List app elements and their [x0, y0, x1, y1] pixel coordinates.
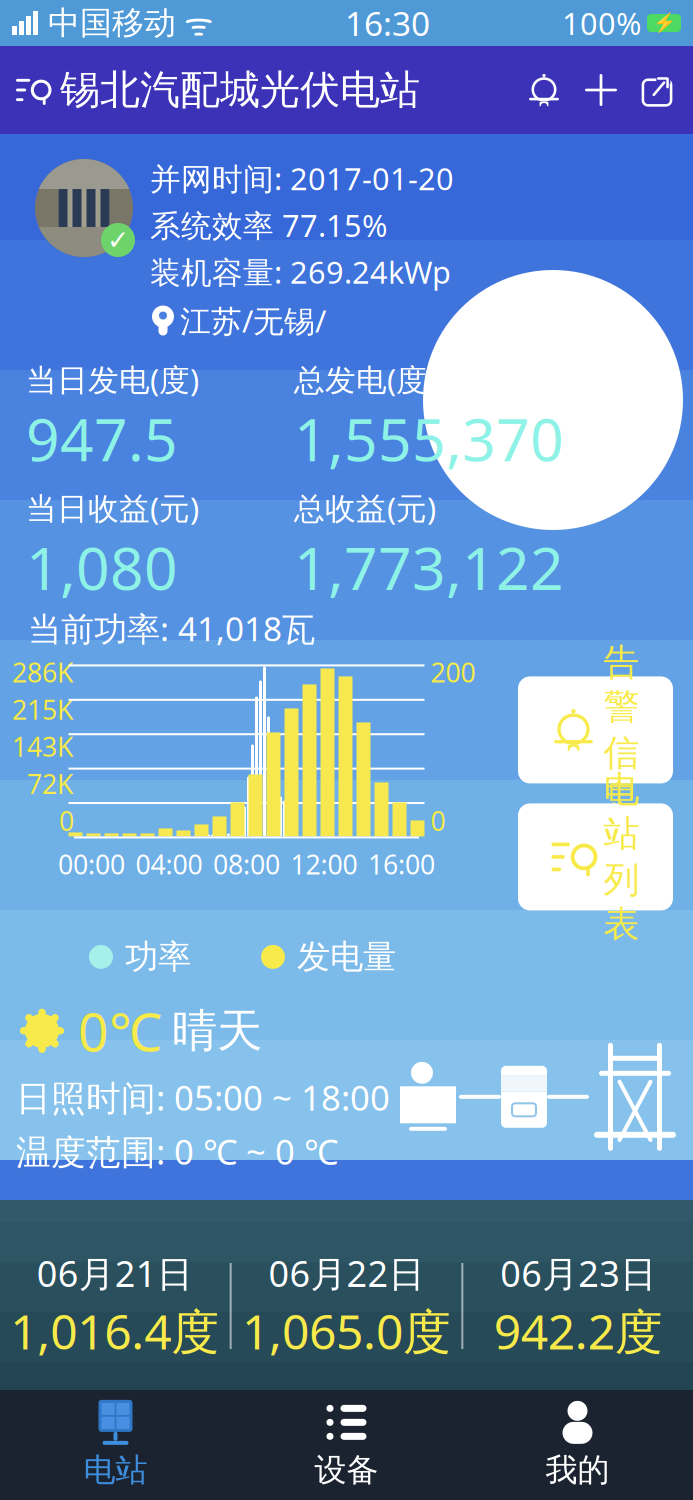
button[interactable]: 锡北汽配城光伏电站 — [0, 55, 420, 124]
staticText: 1,555,370 — [294, 400, 564, 477]
staticText: 16:00 — [368, 846, 435, 882]
staticText: 当前功率: 41,018瓦 — [28, 606, 315, 650]
staticText: 装机容量: 269.24kWp — [150, 251, 451, 292]
staticText: 我的 — [545, 1450, 609, 1490]
staticText: 1,080 — [26, 528, 178, 606]
staticText: 功率 — [125, 936, 191, 977]
staticText: 143K — [12, 729, 74, 764]
staticText: 06月21日 — [37, 1249, 193, 1297]
staticText: 告警 — [603, 640, 639, 729]
button[interactable]: 我的 — [462, 1390, 693, 1500]
staticText: 0 — [59, 803, 74, 838]
staticText: 0℃ — [78, 995, 162, 1066]
staticText: 1,773,122 — [294, 528, 564, 606]
staticText: 04:00 — [135, 846, 202, 882]
staticText: 942.2度 — [494, 1299, 663, 1363]
staticText: 08:00 — [213, 846, 280, 882]
staticText: 16:30 — [345, 1, 430, 45]
staticText: 06月22日 — [268, 1249, 424, 1297]
staticText: 总发电(度) — [294, 359, 436, 400]
staticText: 0 — [430, 803, 445, 838]
staticText: 列表 — [603, 858, 639, 946]
staticText: 设备 — [314, 1450, 378, 1490]
staticText: 电站 — [603, 767, 639, 856]
button[interactable]: Add — [573, 62, 629, 118]
staticText: 中国移动 — [38, 3, 176, 43]
staticText: 06月23日 — [500, 1249, 656, 1297]
staticText: 286K — [12, 654, 74, 690]
staticText: 100% — [562, 3, 641, 43]
button[interactable]: 告警 — [518, 676, 673, 783]
staticText: 系统效率 77.15% — [150, 205, 387, 245]
staticText: 1,065.0度 — [242, 1299, 451, 1363]
staticText: 电站 — [83, 1450, 147, 1490]
staticText: 72K — [27, 766, 74, 801]
staticText: 00:00 — [58, 846, 125, 882]
staticText: ✓ — [107, 225, 129, 255]
staticText: 当日发电(度) — [26, 359, 199, 400]
staticText: ᯤ — [176, 2, 213, 44]
button[interactable]: 电站 — [518, 803, 673, 910]
staticText: 发电量 — [297, 936, 396, 977]
staticText: ⚡ — [652, 12, 675, 34]
staticText: 12:00 — [290, 846, 357, 882]
staticText: 锡北汽配城光伏电站 — [60, 65, 420, 114]
staticText: 信息 — [603, 731, 639, 819]
button[interactable]: 电站 — [0, 1390, 231, 1500]
staticText: 当日收益(元) — [26, 487, 199, 528]
button[interactable]: 设备 — [231, 1390, 462, 1500]
staticText: 总收益(元) — [294, 487, 436, 528]
staticText: 947.5 — [26, 400, 178, 477]
staticText: 215K — [12, 692, 74, 727]
staticText: 200 — [430, 654, 475, 690]
staticText: 1,016.4度 — [10, 1299, 219, 1363]
staticText: 晴天 — [172, 1003, 262, 1059]
button[interactable]: Alerts — [515, 61, 573, 119]
staticText: 温度范围: 0 ℃ ~ 0 ℃ — [16, 1128, 338, 1174]
staticText: 并网时间: 2017-01-20 — [150, 158, 454, 199]
staticText: 江苏/无锡/ — [180, 300, 326, 341]
button[interactable]: Share — [629, 62, 685, 118]
staticText: 日照时间: 05:00 ~ 18:00 — [16, 1074, 390, 1120]
